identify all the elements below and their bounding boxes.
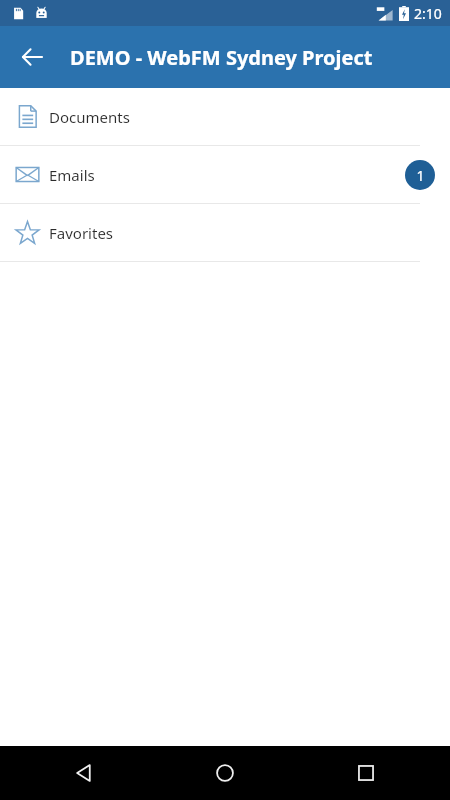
button[interactable]: Navigate up <box>8 33 56 81</box>
button[interactable]: Home <box>201 749 249 797</box>
staticText: Emails <box>49 165 95 185</box>
staticText: DEMO - WebFM Sydney Project <box>70 44 373 71</box>
button[interactable]: Favorites <box>0 204 450 261</box>
button[interactable]: Recent apps <box>342 749 390 797</box>
button[interactable]: Emails <box>0 146 450 203</box>
button[interactable]: Documents <box>0 88 450 145</box>
staticText: 2:10 <box>414 4 442 23</box>
staticText: 1 <box>416 166 425 185</box>
button[interactable]: Back <box>60 749 108 797</box>
staticText: Favorites <box>49 223 114 243</box>
staticText: Documents <box>49 107 130 127</box>
